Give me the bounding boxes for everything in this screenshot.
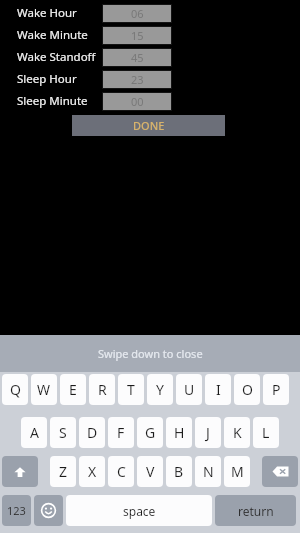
staticText: DONE: [133, 118, 165, 133]
staticText: 15: [131, 28, 144, 43]
button[interactable]: O: [234, 374, 260, 405]
button[interactable]: H: [166, 417, 192, 448]
staticText: Wake Minute: [17, 27, 88, 43]
staticText: B: [174, 462, 184, 481]
staticText: Q: [10, 380, 21, 399]
staticText: E: [69, 380, 77, 399]
button[interactable]: Q: [2, 374, 28, 405]
button[interactable]: S: [50, 417, 76, 448]
staticText: O: [242, 380, 253, 399]
button[interactable]: 45: [103, 49, 171, 66]
staticText: W: [37, 380, 51, 399]
button[interactable]: I: [205, 374, 231, 405]
staticText: P: [272, 380, 281, 399]
button[interactable]: 23: [103, 71, 171, 88]
button[interactable]: C: [108, 456, 134, 487]
staticText: Sleep Minute: [17, 93, 88, 109]
button[interactable]: P: [263, 374, 289, 405]
button[interactable]: 123: [2, 495, 31, 526]
button[interactable]: 06: [103, 5, 171, 22]
button[interactable]: K: [224, 417, 250, 448]
staticText: Y: [156, 380, 164, 399]
button[interactable]: E: [60, 374, 86, 405]
staticText: space: [123, 503, 156, 519]
button[interactable]: J: [195, 417, 221, 448]
staticText: G: [145, 423, 156, 442]
button[interactable]: B: [166, 456, 192, 487]
button[interactable]: 15: [103, 27, 171, 44]
staticText: Swipe down to close: [98, 346, 203, 361]
button[interactable]: D: [79, 417, 105, 448]
staticText: U: [184, 380, 195, 399]
staticText: H: [174, 423, 185, 442]
button[interactable]: Shift: [2, 456, 38, 487]
staticText: N: [203, 462, 214, 481]
button[interactable]: Swipe down to close: [0, 335, 300, 372]
staticText: return: [238, 503, 274, 519]
staticText: F: [117, 423, 125, 442]
button[interactable]: L: [253, 417, 279, 448]
staticText: A: [30, 423, 39, 442]
staticText: 45: [131, 50, 144, 65]
button[interactable]: G: [137, 417, 163, 448]
button[interactable]: return: [215, 495, 296, 526]
staticText: V: [146, 462, 155, 481]
staticText: Wake Hour: [17, 5, 77, 21]
button[interactable]: 00: [103, 93, 171, 110]
button[interactable]: Backspace: [262, 456, 298, 487]
staticText: 00: [131, 94, 144, 109]
button[interactable]: T: [118, 374, 144, 405]
staticText: R: [98, 380, 107, 399]
staticText: X: [88, 462, 97, 481]
button[interactable]: Y: [147, 374, 173, 405]
button[interactable]: X: [79, 456, 105, 487]
staticText: K: [233, 423, 242, 442]
staticText: D: [87, 423, 98, 442]
button[interactable]: U: [176, 374, 202, 405]
staticText: J: [206, 423, 210, 442]
button[interactable]: W: [31, 374, 57, 405]
button[interactable]: Emoji keyboard: [34, 495, 63, 526]
button[interactable]: Z: [50, 456, 76, 487]
staticText: 06: [131, 6, 144, 21]
staticText: Sleep Hour: [17, 71, 77, 87]
staticText: Z: [59, 462, 68, 481]
staticText: 23: [131, 72, 144, 87]
button[interactable]: M: [224, 456, 250, 487]
button[interactable]: R: [89, 374, 115, 405]
button[interactable]: DONE: [72, 115, 225, 136]
staticText: Wake Standoff: [17, 49, 96, 65]
staticText: S: [59, 423, 67, 442]
staticText: I: [216, 380, 221, 399]
button[interactable]: F: [108, 417, 134, 448]
button[interactable]: N: [195, 456, 221, 487]
button[interactable]: V: [137, 456, 163, 487]
staticText: L: [262, 423, 270, 442]
button[interactable]: space: [66, 495, 212, 526]
staticText: T: [127, 380, 135, 399]
staticText: C: [117, 462, 126, 481]
staticText: 123: [7, 503, 26, 518]
button[interactable]: A: [21, 417, 47, 448]
staticText: M: [231, 462, 244, 481]
